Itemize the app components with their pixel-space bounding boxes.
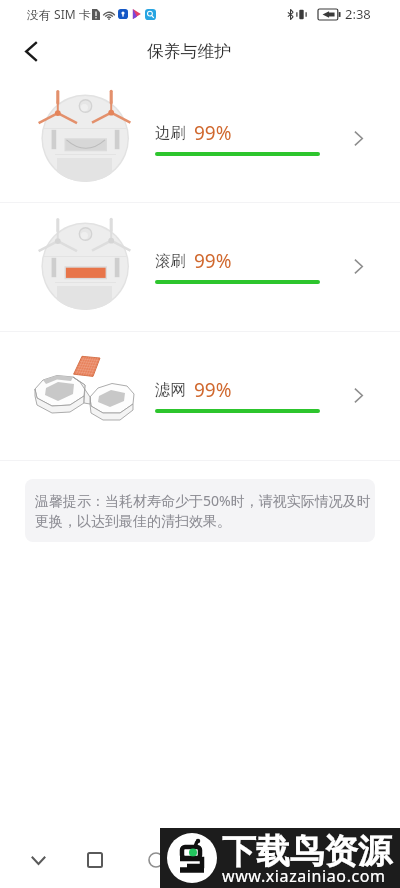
staticText: 没有 SIM 卡 <box>27 6 91 22</box>
button[interactable]: 滤网 <box>0 332 400 460</box>
button[interactable]: Home <box>140 844 172 876</box>
button[interactable]: Back <box>22 844 54 876</box>
staticText: 温馨提示：当耗材寿命少于50%时，请视实际情况及时更换，以达到最佳的清扫效果。 <box>35 491 373 530</box>
button[interactable]: 边刷 <box>0 75 400 202</box>
button[interactable]: 滚刷 <box>0 203 400 331</box>
staticText: 保养与维护 <box>147 41 231 62</box>
staticText: 下载鸟资源 <box>222 830 392 873</box>
staticText: 99% <box>194 120 232 146</box>
staticText: 边刷 <box>155 123 186 143</box>
button[interactable]: Back <box>11 31 51 71</box>
staticText: 滤网 <box>155 380 186 400</box>
staticText: 2:38 <box>345 5 371 23</box>
staticText: 滚刷 <box>155 251 186 271</box>
staticText: 99% <box>194 248 232 274</box>
button[interactable]: Recents <box>79 844 111 876</box>
staticText: www.xiazainiao.com <box>222 865 386 887</box>
staticText: 99% <box>194 377 232 403</box>
